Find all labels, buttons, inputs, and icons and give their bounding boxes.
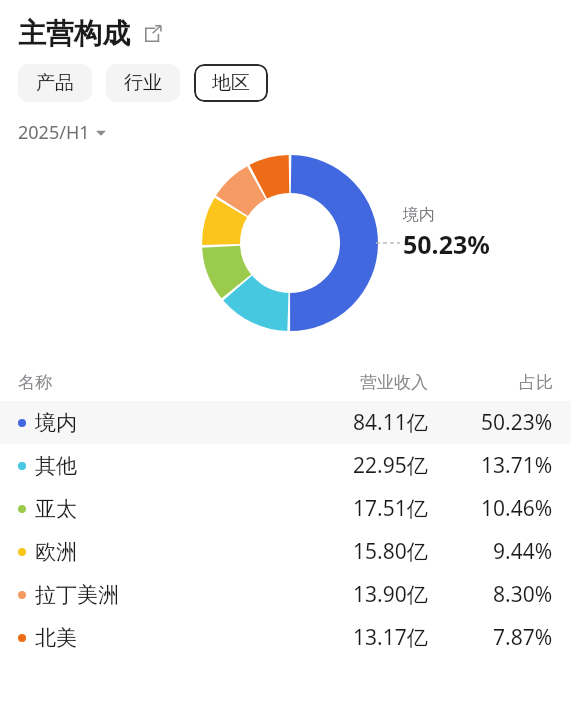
button[interactable]: 2025/H1 bbox=[18, 120, 106, 145]
staticText: 15.80亿 bbox=[353, 537, 428, 566]
staticText: 13.17亿 bbox=[353, 623, 428, 652]
staticText: 其他 bbox=[35, 453, 77, 479]
staticText: 产品 bbox=[36, 71, 74, 95]
staticText: 13.71% bbox=[481, 451, 553, 480]
staticText: 境内 bbox=[403, 205, 435, 225]
staticText: 13.90亿 bbox=[353, 580, 428, 609]
staticText: 营业收入 bbox=[360, 372, 428, 393]
staticText: 2025/H1 bbox=[18, 120, 90, 145]
staticText: 名称 bbox=[18, 372, 52, 393]
staticText: 7.87% bbox=[493, 623, 553, 652]
button[interactable]: 北美 bbox=[0, 616, 571, 659]
staticText: 亚太 bbox=[35, 496, 77, 522]
staticText: 北美 bbox=[35, 625, 77, 651]
button[interactable]: 拉丁美洲 bbox=[0, 573, 571, 616]
staticText: 主营构成 bbox=[18, 16, 130, 51]
button[interactable]: 其他 bbox=[0, 444, 571, 487]
staticText: 占比 bbox=[519, 372, 553, 393]
staticText: 8.30% bbox=[493, 580, 553, 609]
button[interactable]: 产品 bbox=[18, 64, 92, 102]
button[interactable]: Share bbox=[140, 21, 166, 47]
button[interactable]: 行业 bbox=[106, 64, 180, 102]
button[interactable]: 亚太 bbox=[0, 487, 571, 530]
staticText: 行业 bbox=[124, 71, 162, 95]
staticText: 地区 bbox=[212, 71, 250, 95]
button[interactable]: 欧洲 bbox=[0, 530, 571, 573]
staticText: 84.11亿 bbox=[353, 408, 428, 437]
staticText: 欧洲 bbox=[35, 539, 77, 565]
staticText: 50.23% bbox=[481, 408, 553, 437]
button[interactable]: 境内 bbox=[0, 401, 571, 444]
button[interactable]: 地区 bbox=[194, 64, 268, 102]
staticText: 境内 bbox=[35, 410, 77, 436]
staticText: 10.46% bbox=[481, 494, 553, 523]
staticText: 拉丁美洲 bbox=[35, 582, 119, 608]
staticText: 9.44% bbox=[493, 537, 553, 566]
staticText: 17.51亿 bbox=[353, 494, 428, 523]
staticText: 22.95亿 bbox=[353, 451, 428, 480]
staticText: 50.23% bbox=[403, 227, 490, 261]
